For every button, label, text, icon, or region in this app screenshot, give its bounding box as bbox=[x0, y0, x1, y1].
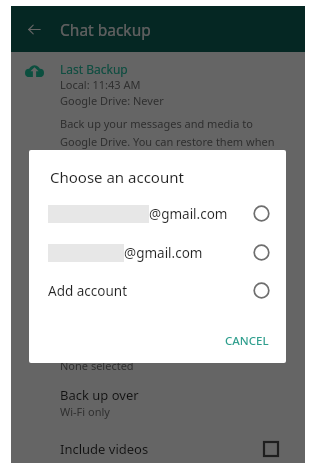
button[interactable]: Add account bbox=[29, 271, 286, 310]
staticText: Back up your messages and media to Googl… bbox=[60, 116, 275, 167]
staticText: @gmail.com bbox=[149, 205, 228, 223]
staticText: Chat backup bbox=[60, 19, 151, 40]
staticText: Last Backup bbox=[60, 61, 128, 77]
button[interactable]: Include videos bbox=[11, 432, 305, 466]
button[interactable]: @gmail.com bbox=[29, 233, 286, 272]
staticText: Wi-Fi only bbox=[60, 404, 110, 419]
staticText: @gmail.com bbox=[124, 244, 203, 262]
staticText: None selected bbox=[60, 358, 134, 373]
button[interactable]: @gmail.com bbox=[29, 194, 286, 233]
staticText: CANCEL bbox=[225, 333, 269, 349]
staticText: Back up over bbox=[60, 386, 139, 404]
button[interactable]: Back up over bbox=[11, 383, 305, 423]
button[interactable]: Back bbox=[21, 16, 47, 42]
staticText: Local: 11:43 AM Google Drive: Never bbox=[60, 77, 164, 108]
staticText: Choose an account bbox=[50, 167, 184, 187]
staticText: Add account bbox=[48, 282, 128, 300]
staticText: Include videos bbox=[60, 440, 149, 458]
button[interactable]: CANCEL bbox=[217, 327, 277, 355]
